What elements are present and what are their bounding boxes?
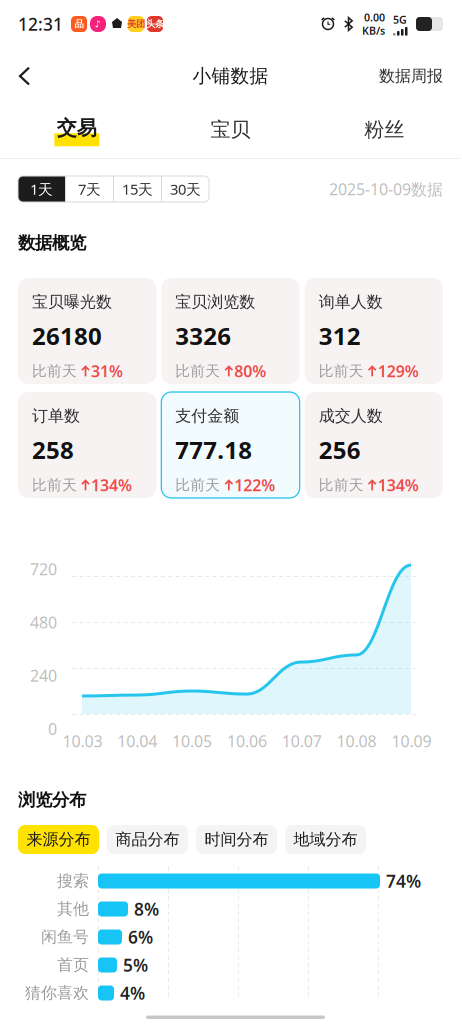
button[interactable]: 时间分布 [196, 825, 277, 854]
staticText: 312 [319, 320, 361, 352]
staticText: 2025-10-09数据 [329, 178, 443, 200]
staticText: 12:31 [18, 12, 63, 35]
staticText: 10.07 [282, 730, 322, 752]
staticText: 0.00 [364, 10, 385, 24]
staticText: 6% [128, 925, 153, 948]
staticText: 支付金额 [175, 406, 239, 426]
staticText: 闲鱼号 [41, 927, 89, 947]
staticText: 256 [319, 434, 361, 466]
staticText: 宝贝 [210, 117, 250, 142]
staticText: 258 [32, 434, 74, 466]
staticText: 10.04 [117, 730, 157, 752]
staticText: 3326 [175, 320, 231, 352]
staticText: 首页 [57, 955, 89, 975]
button[interactable]: 询单人数 [305, 278, 443, 384]
button[interactable]: 粉丝 [307, 104, 461, 158]
button[interactable]: 宝贝曝光数 [18, 278, 156, 384]
button[interactable]: 支付金额 [161, 392, 300, 498]
button[interactable]: 15天 [114, 176, 161, 202]
staticText: 240 [30, 665, 57, 686]
staticText: 地域分布 [293, 830, 357, 849]
staticText: 80% [234, 360, 266, 382]
staticText: 来源分布 [26, 830, 90, 849]
staticText: 小铺数据 [192, 64, 268, 87]
staticText: 7天 [78, 179, 101, 199]
button[interactable]: 宝贝浏览数 [161, 278, 300, 384]
staticText: 订单数 [32, 406, 80, 426]
staticText: 宝贝浏览数 [175, 292, 255, 312]
staticText: 5G [393, 12, 407, 27]
button[interactable]: 成交人数 [305, 392, 443, 498]
staticText: 粉丝 [364, 117, 404, 142]
staticText: 比前天 [319, 476, 364, 494]
staticText: 777.18 [175, 434, 252, 466]
staticText: 商品分布 [115, 830, 179, 849]
button[interactable]: 订单数 [18, 392, 156, 498]
staticText: 美团 [127, 18, 145, 30]
staticText: 134% [91, 474, 132, 496]
staticText: KB/s [362, 23, 385, 38]
staticText: 4% [120, 981, 145, 1004]
staticText: 122% [234, 474, 275, 496]
staticText: ♪ [95, 19, 101, 29]
button[interactable]: 7天 [66, 176, 113, 202]
staticText: 猜你喜欢 [25, 983, 89, 1003]
staticText: 数据概览 [18, 232, 86, 254]
staticText: 搜索 [57, 871, 89, 891]
button[interactable]: 返回 [0, 52, 45, 99]
staticText: 10.09 [391, 730, 431, 752]
staticText: 时间分布 [204, 830, 268, 849]
staticText: 比前天 [175, 362, 220, 380]
staticText: 31% [91, 360, 123, 382]
staticText: 480 [30, 612, 57, 633]
staticText: 询单人数 [319, 292, 383, 312]
button[interactable]: 1天 [18, 176, 65, 202]
staticText: 10.05 [172, 730, 212, 752]
button[interactable]: 来源分布 [18, 825, 99, 854]
staticText: 品 [74, 18, 83, 30]
staticText: 比前天 [319, 362, 364, 380]
staticText: 129% [378, 360, 419, 382]
staticText: 134% [378, 474, 419, 496]
staticText: 浏览分布 [18, 789, 86, 811]
button[interactable]: 交易 [0, 104, 154, 158]
staticText: 74% [386, 869, 421, 892]
staticText: 10.06 [227, 730, 267, 752]
staticText: 头条 [146, 18, 164, 30]
staticText: 数据周报 [379, 66, 443, 86]
staticText: 26180 [32, 320, 102, 352]
staticText: 5% [123, 953, 148, 976]
staticText: 成交人数 [319, 406, 383, 426]
staticText: 0 [48, 718, 57, 739]
staticText: 其他 [57, 899, 89, 919]
button[interactable]: 30天 [162, 176, 209, 202]
button[interactable]: 数据周报 [365, 52, 461, 100]
button[interactable]: 地域分布 [285, 825, 366, 854]
staticText: 1天 [30, 179, 53, 199]
staticText: 720 [30, 558, 57, 580]
staticText: 8% [134, 897, 159, 920]
staticText: 比前天 [32, 362, 77, 380]
button[interactable]: 商品分布 [107, 825, 188, 854]
staticText: 15天 [122, 179, 153, 199]
staticText: 宝贝曝光数 [32, 292, 112, 312]
staticText: 10.08 [337, 730, 377, 752]
button[interactable]: 宝贝 [154, 104, 307, 158]
staticText: 交易 [57, 116, 97, 140]
staticText: 比前天 [175, 476, 220, 494]
staticText: 10.03 [62, 730, 102, 752]
staticText: 30天 [170, 179, 201, 199]
staticText: 比前天 [32, 476, 77, 494]
